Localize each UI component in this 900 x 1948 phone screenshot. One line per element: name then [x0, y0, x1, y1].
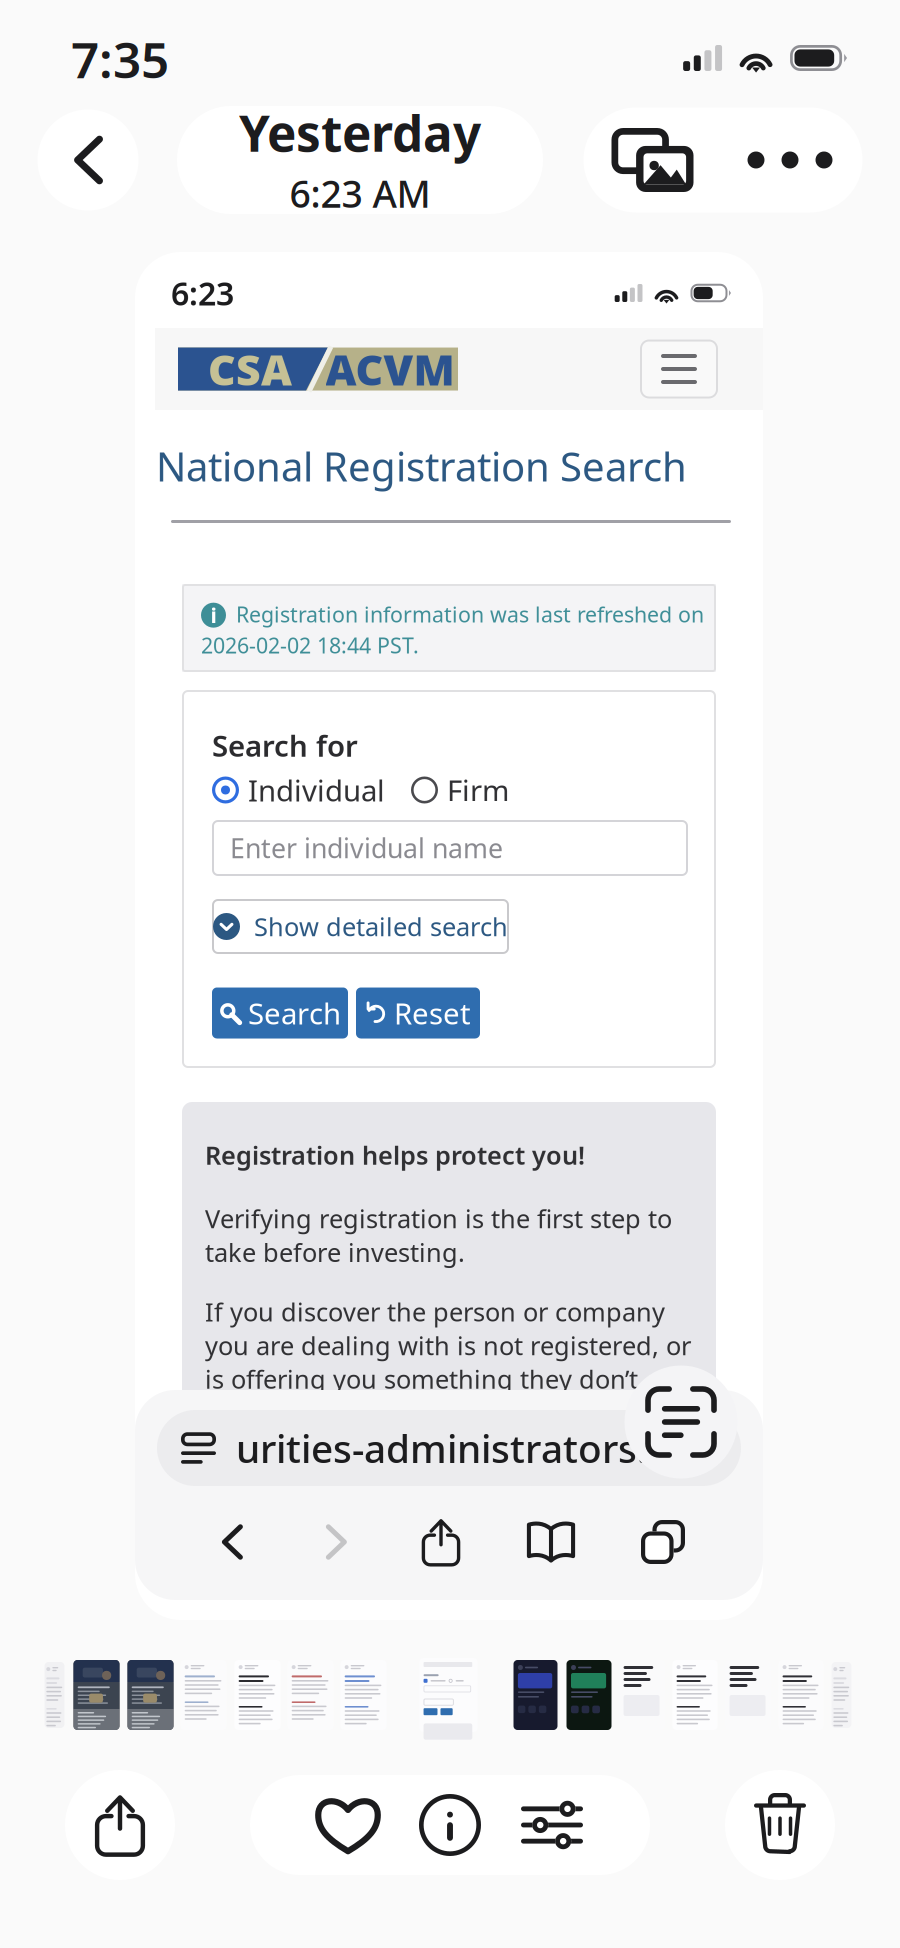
button[interactable]: Delete [725, 1770, 835, 1880]
staticText: National Registration Search [156, 439, 687, 492]
button[interactable]: Reset [356, 987, 480, 1038]
button[interactable]: Tabs [641, 1520, 685, 1564]
button[interactable]: Menu [640, 339, 718, 398]
button[interactable]: Info [419, 1794, 481, 1856]
button[interactable]: Share [421, 1519, 461, 1565]
staticText: 2026-02-02 18:44 PST. [201, 631, 419, 659]
staticText: Yesterday [239, 100, 481, 165]
staticText: 6:23 [171, 272, 234, 314]
staticText: Canada’s provincial and territorial secu… [182, 1438, 704, 1472]
button[interactable]: Adjust [521, 1806, 583, 1844]
button[interactable]: Show detailed search [212, 899, 509, 954]
staticText: 6:23 AM [289, 168, 430, 218]
staticText: CSA [208, 341, 292, 397]
staticText: Enter individual name [230, 830, 503, 866]
staticText: Firm [447, 770, 509, 809]
button[interactable]: Forward [317, 1523, 355, 1561]
button[interactable]: Back [213, 1523, 251, 1561]
button[interactable]: Back [37, 107, 138, 212]
staticText: 7:35 [71, 26, 169, 92]
staticText: Individual [248, 770, 385, 809]
button[interactable]: Share [65, 1770, 175, 1880]
staticText: Search [248, 993, 341, 1032]
staticText: i [210, 601, 216, 629]
staticText: Verifying registration is the first step… [205, 1202, 672, 1269]
button[interactable]: More [747, 151, 832, 168]
staticText: Registration information was last refres… [236, 600, 704, 628]
staticText: Registration helps protect you! [205, 1138, 585, 1172]
staticText: Search for [212, 726, 358, 765]
button[interactable]: Favourite [317, 1797, 379, 1853]
button[interactable]: Search [212, 987, 348, 1038]
staticText: urities-administrators.ca [236, 1422, 689, 1474]
button[interactable]: Live Text [624, 1365, 737, 1478]
staticText: ACVM [325, 341, 454, 397]
button[interactable]: Yesterday [177, 106, 543, 214]
button[interactable]: Bookmarks [527, 1522, 575, 1562]
staticText: Reset [394, 993, 471, 1032]
button[interactable]: All Photos [611, 128, 693, 192]
staticText: Show detailed search [254, 910, 508, 943]
staticText: If you discover the person or company yo… [205, 1295, 691, 1429]
